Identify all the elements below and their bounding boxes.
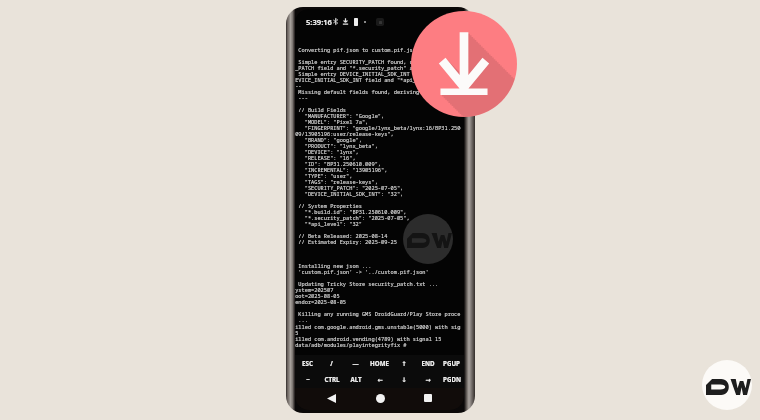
- button[interactable]: ↓: [392, 371, 415, 387]
- staticText: →: [425, 376, 431, 383]
- staticText: 15: [295, 329, 299, 336]
- staticText: "ID": "BP31.250610.009",: [295, 160, 381, 167]
- staticText: ↑: [401, 360, 407, 367]
- staticText: - Installing new json ...: [295, 262, 372, 269]
- staticText: "RELEASE": "16",: [295, 154, 356, 161]
- staticText: p 'custom.pif.json' -> '../custom.pif.js…: [295, 268, 429, 275]
- staticText: CTRL: [324, 375, 340, 383]
- staticText: "MANUFACTURER": "Google",: [295, 112, 385, 119]
- button[interactable]: Recent apps: [416, 388, 440, 408]
- staticText: 009/13905196:user/release-keys",: [295, 130, 394, 137]
- staticText: system=202507: [295, 286, 334, 293]
- staticText: ALT: [350, 375, 362, 383]
- staticText: DEVICE_INITIAL_SDK_INT field and "*api_l: [295, 76, 420, 83]
- staticText: - Updating Tricky Store security_patch.t…: [295, 280, 439, 287]
- staticText: ---: [295, 94, 308, 101]
- staticText: - Simple entry SECURITY_PATCH found, cop: [295, 58, 420, 65]
- button[interactable]: Download: [411, 11, 517, 117]
- button[interactable]: PGUP: [440, 355, 463, 371]
- staticText: —: [352, 359, 359, 367]
- button[interactable]: HOME: [368, 355, 391, 371]
- staticText: "SECURITY_PATCH": "2025-07-05",: [295, 184, 404, 191]
- staticText: "FINGERPRINT": "google/lynx_beta/lynx:16…: [295, 124, 461, 131]
- staticText: Killed com.google.android.gms.unstable(5…: [295, 323, 461, 330]
- staticText: // Build Fields: [295, 106, 347, 113]
- staticText: vendor=2025-08-05: [295, 298, 347, 305]
- staticText: Killed com.android.vending(4789) with si…: [295, 335, 442, 342]
- staticText: ---: [295, 82, 302, 89]
- button[interactable]: CTRL: [320, 371, 343, 387]
- button[interactable]: ←: [368, 371, 391, 387]
- staticText: ESC: [302, 359, 313, 367]
- staticText: HOME: [370, 359, 389, 367]
- staticText: - Converting pif.json to custom.pif.json: [295, 46, 420, 53]
- staticText: * ...: [295, 316, 308, 323]
- staticText: "INCREMENTAL": "13905196",: [295, 166, 388, 173]
- staticText: Y_PATCH field and "*.security_patch" acc: [295, 64, 420, 71]
- staticText: 5:39:16: [306, 17, 332, 27]
- button[interactable]: /: [320, 355, 343, 371]
- button[interactable]: END: [416, 355, 439, 371]
- staticText: boot=2025-08-05: [295, 292, 340, 299]
- staticText: ↓: [401, 376, 407, 383]
- button[interactable]: →: [416, 371, 439, 387]
- staticText: END: [421, 359, 435, 367]
- button[interactable]: Back: [319, 388, 343, 408]
- button[interactable]: ESC: [296, 355, 319, 371]
- button[interactable]: PGDN: [440, 371, 463, 387]
- staticText: "DEVICE_INITIAL_SDK_INT": "32",: [295, 190, 404, 197]
- staticText: "*api_level": "32": [295, 220, 362, 227]
- staticText: "*.security_patch": "2025-07-05",: [295, 214, 410, 221]
- button[interactable]: ALT: [344, 371, 367, 387]
- button[interactable]: DW logo: [702, 360, 752, 410]
- staticText: - Simple entry DEVICE_INITIAL_SDK_INT fo: [295, 70, 420, 77]
- button[interactable]: ~: [296, 371, 319, 387]
- staticText: /: [330, 359, 333, 367]
- staticText: "TAGS": "release-keys",: [295, 178, 378, 185]
- staticText: "MODEL": "Pixel 7a",: [295, 118, 369, 125]
- staticText: // System Properties: [295, 202, 362, 209]
- staticText: PGDN: [443, 375, 461, 383]
- staticText: PGUP: [443, 359, 460, 367]
- staticText: - Killing any running GMS DroidGuard/Pla…: [295, 310, 461, 317]
- staticText: "PRODUCT": "lynx_beta",: [295, 142, 378, 149]
- staticText: "DEVICE": "lynx",: [295, 148, 359, 155]
- button[interactable]: —: [344, 355, 367, 371]
- staticText: ~: [306, 375, 310, 383]
- staticText: // Estimated Expiry: 2025-09-25: [295, 238, 397, 245]
- staticText: "*.build.id": "BP31.250610.009",: [295, 208, 407, 215]
- staticText: ←: [377, 376, 383, 383]
- button[interactable]: ↑: [392, 355, 415, 371]
- staticText: - Missing default fields found, deriving: [295, 88, 420, 95]
- staticText: // Beta Released: 2025-08-14: [295, 232, 388, 239]
- staticText: "TYPE": "user",: [295, 172, 353, 179]
- staticText: "BRAND": "google",: [295, 136, 362, 143]
- staticText: /data/adb/modules/playintegrityfix #: [295, 341, 410, 348]
- button[interactable]: Home: [368, 388, 392, 408]
